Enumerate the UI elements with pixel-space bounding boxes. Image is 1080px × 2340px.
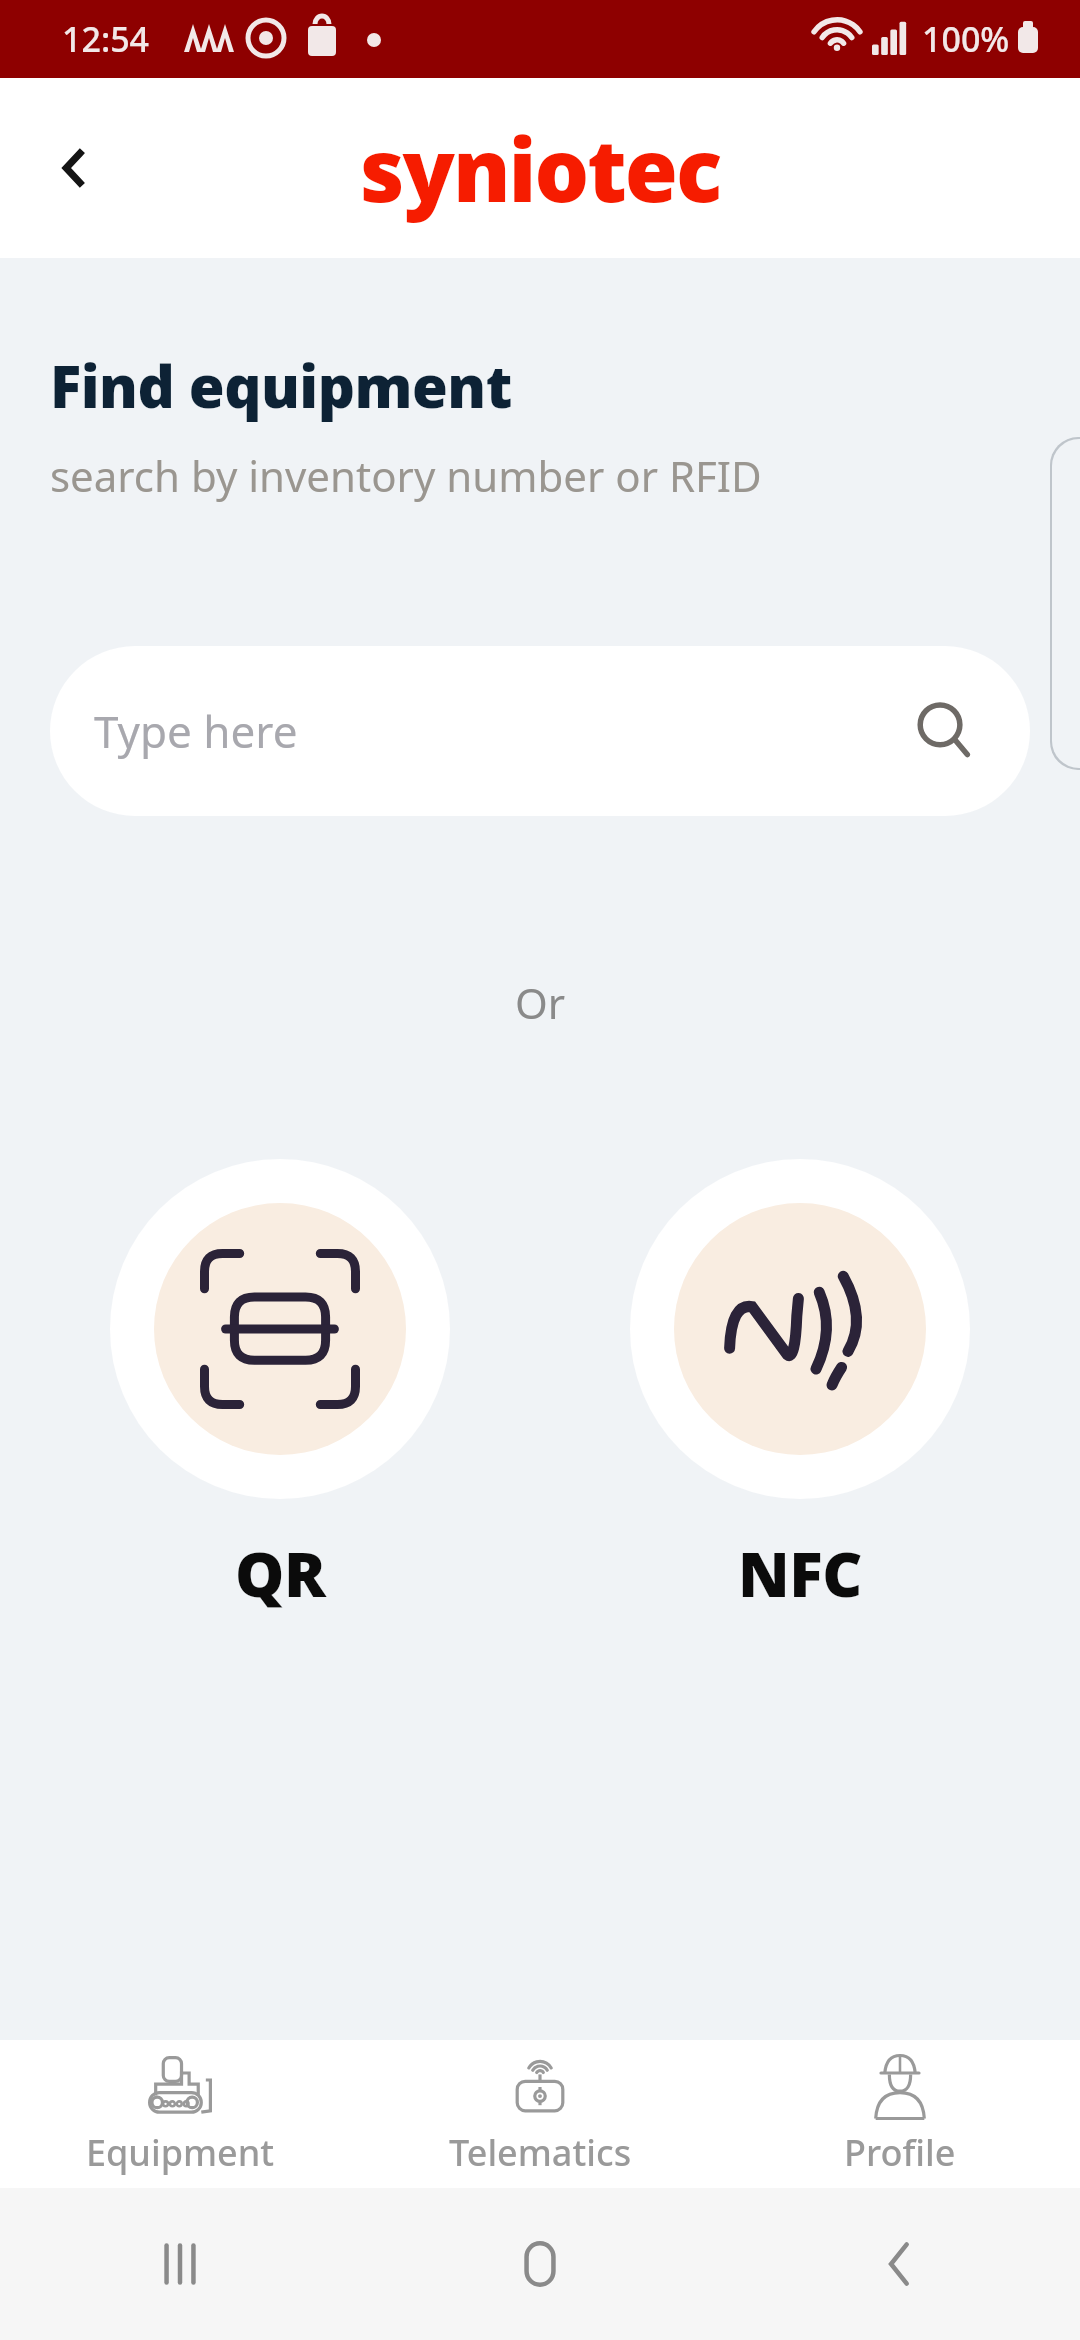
staticText: QR	[235, 1531, 326, 1615]
button[interactable]: Home	[360, 2188, 720, 2340]
button[interactable]: Recent apps	[0, 2188, 360, 2340]
staticText: Or	[0, 974, 1080, 1031]
button[interactable]: Type here	[50, 646, 1030, 816]
button[interactable]: Equipment	[0, 2040, 360, 2188]
staticText: search by inventory number or RFID	[50, 447, 762, 504]
button[interactable]: Profile	[720, 2040, 1080, 2188]
button[interactable]: Scan QR code	[110, 1159, 450, 1615]
button[interactable]: Telematics	[360, 2040, 720, 2188]
staticText: syniotec	[360, 110, 721, 227]
staticText: NFC	[738, 1531, 862, 1615]
staticText: 100%	[922, 16, 1010, 62]
staticText: Profile	[844, 2128, 956, 2177]
button[interactable]: Search	[908, 694, 982, 768]
button[interactable]: Back	[720, 2188, 1080, 2340]
staticText: Find equipment	[50, 346, 512, 425]
staticText: 12:54	[62, 16, 150, 62]
button[interactable]: Scan NFC tag	[630, 1159, 970, 1615]
staticText: Type here	[94, 701, 298, 761]
staticText: Telematics	[449, 2128, 632, 2177]
staticText: Equipment	[86, 2128, 275, 2177]
button[interactable]: Back	[28, 122, 120, 214]
